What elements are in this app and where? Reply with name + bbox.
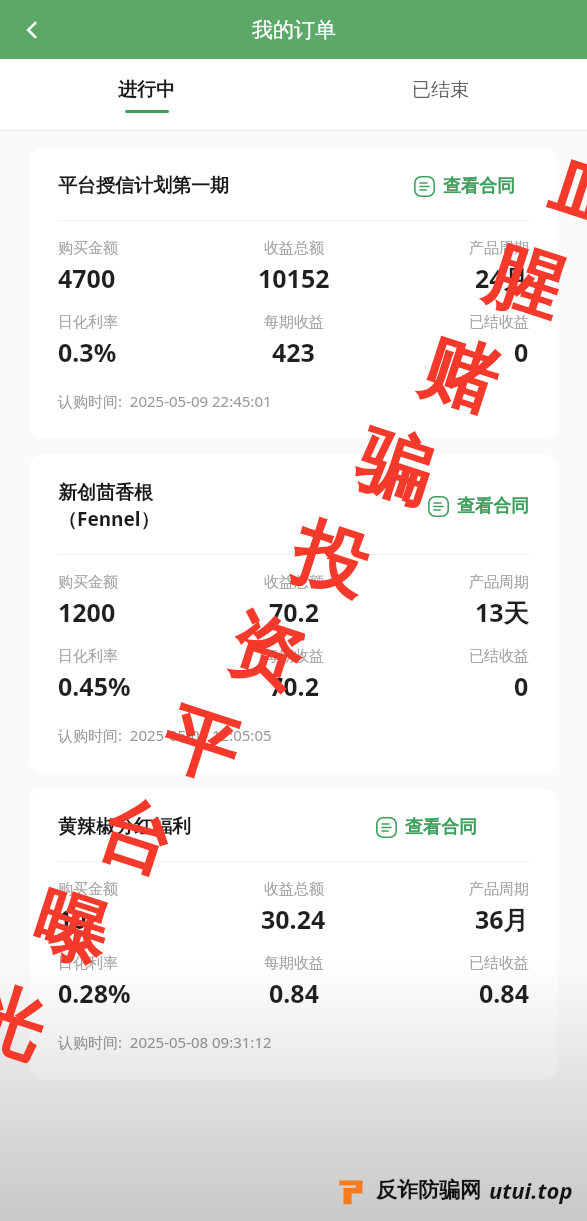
button[interactable]: 平台授信计划第一期 (30, 148, 557, 439)
staticText: 已结收益 (469, 647, 529, 666)
staticText: 平台授信计划第一期 (58, 174, 229, 198)
button[interactable]: 查看合同 (376, 816, 477, 839)
staticText: 0 (514, 335, 529, 369)
staticText: 0.3% (58, 335, 117, 369)
staticText: 收益总额 (264, 880, 324, 899)
staticText: 收益总额 (264, 573, 324, 592)
staticText: 30.24 (261, 902, 326, 936)
staticText: 0.84 (479, 976, 529, 1010)
staticText: 购买金额 (58, 880, 118, 899)
staticText: 70.2 (269, 595, 319, 629)
staticText: 认购时间: 2025-05-08 09:31:12 (58, 1032, 272, 1052)
staticText: 0.45% (58, 669, 131, 703)
staticText: 70.2 (269, 669, 319, 703)
staticText: 我的订单 (252, 17, 336, 43)
staticText: 每期收益 (264, 954, 324, 973)
staticText: 产品周期 (469, 239, 529, 258)
staticText: 产品周期 (469, 880, 529, 899)
staticText: utui.top (489, 1175, 573, 1205)
staticText: 认购时间: 2025-05-09 12:05:05 (58, 725, 272, 745)
button[interactable]: 黄辣椒分红福利 (30, 789, 557, 1080)
button[interactable]: Back (10, 8, 54, 52)
staticText: 每期收益 (264, 647, 324, 666)
button[interactable]: 已结束 (293, 59, 587, 131)
staticText: 日化利率 (58, 313, 118, 332)
staticText: 0.28% (58, 976, 131, 1010)
staticText: 查看合同 (405, 816, 477, 839)
button[interactable]: 新创茴香根（Fennel） (30, 455, 557, 773)
staticText: 进行中 (118, 78, 175, 102)
staticText: 认购时间: 2025-05-09 22:45:01 (58, 391, 272, 411)
staticText: 10152 (258, 261, 330, 295)
staticText: 查看合同 (457, 495, 529, 518)
staticText: 收益总额 (264, 239, 324, 258)
staticText: 13天 (475, 595, 529, 629)
staticText: 4700 (58, 261, 116, 295)
staticText: 购买金额 (58, 573, 118, 592)
button[interactable]: 查看合同 (428, 495, 529, 518)
staticText: 0 (514, 669, 529, 703)
staticText: 查看合同 (443, 175, 515, 198)
staticText: 已结收益 (469, 954, 529, 973)
staticText: 1200 (58, 595, 116, 629)
button[interactable]: 查看合同 (414, 175, 515, 198)
staticText: 购买金额 (58, 239, 118, 258)
staticText: 423 (272, 335, 315, 369)
staticText: 产品周期 (469, 573, 529, 592)
staticText: 已结束 (412, 78, 469, 102)
staticText: 已结收益 (469, 313, 529, 332)
staticText: 日化利率 (58, 647, 118, 666)
staticText: 36月 (475, 902, 529, 936)
staticText: 反诈防骗网 (376, 1177, 481, 1203)
staticText: 日化利率 (58, 954, 118, 973)
staticText: 每期收益 (264, 313, 324, 332)
staticText: 24月 (475, 261, 529, 295)
staticText: 0.84 (269, 976, 319, 1010)
staticText: 黄辣椒分红福利 (58, 815, 191, 839)
button[interactable]: 进行中 (0, 59, 293, 131)
staticText: 新创茴香根（Fennel） (58, 481, 243, 532)
staticText: 10 (58, 902, 87, 936)
